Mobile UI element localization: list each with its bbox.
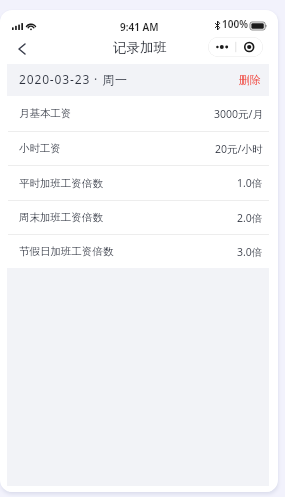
staticText: 100% xyxy=(222,17,248,31)
staticText: 节假日加班工资倍数 xyxy=(19,245,114,258)
staticText: 记录加班 xyxy=(113,39,167,56)
staticText: 3000元/月 xyxy=(214,107,263,121)
button[interactable]: 删除 xyxy=(239,73,261,87)
button[interactable]: 小时工资 xyxy=(7,132,269,165)
staticText: 20元/小时 xyxy=(215,142,263,156)
staticText: 2020-03-23 · 周一 xyxy=(19,71,128,87)
staticText: 周末加班工资倍数 xyxy=(19,211,103,224)
button[interactable]: 节假日加班工资倍数 xyxy=(7,235,269,268)
button[interactable]: Back xyxy=(10,37,34,61)
button[interactable]: 月基本工资 xyxy=(7,96,269,131)
staticText: 删除 xyxy=(239,73,261,87)
button[interactable]: 周末加班工资倍数 xyxy=(7,201,269,234)
button[interactable]: 平时加班工资倍数 xyxy=(7,166,269,200)
staticText: 3.0倍 xyxy=(237,245,263,259)
button[interactable]: More options xyxy=(208,37,263,57)
staticText: 1.0倍 xyxy=(237,176,263,190)
staticText: 2.0倍 xyxy=(237,211,263,225)
staticText: 9:41 AM xyxy=(120,20,159,34)
staticText: 月基本工资 xyxy=(19,107,72,120)
staticText: 小时工资 xyxy=(19,142,61,155)
staticText: 平时加班工资倍数 xyxy=(19,177,103,190)
